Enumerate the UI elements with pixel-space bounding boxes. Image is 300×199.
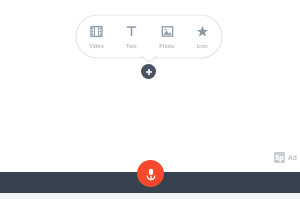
button[interactable]: Add — [141, 64, 156, 79]
staticText: Icon — [196, 42, 208, 49]
staticText: Video — [89, 42, 104, 49]
button[interactable]: Text — [115, 22, 147, 51]
button[interactable]: Sponsored ad — [274, 152, 297, 163]
button[interactable]: Icon — [186, 22, 218, 51]
staticText: Ad — [288, 153, 297, 163]
staticText: Sp — [275, 153, 284, 163]
staticText: Photo — [159, 42, 175, 49]
button[interactable]: Video — [80, 22, 112, 51]
button[interactable]: Record voice — [137, 160, 164, 187]
button[interactable]: Photo — [151, 22, 183, 51]
staticText: Text — [126, 42, 137, 49]
